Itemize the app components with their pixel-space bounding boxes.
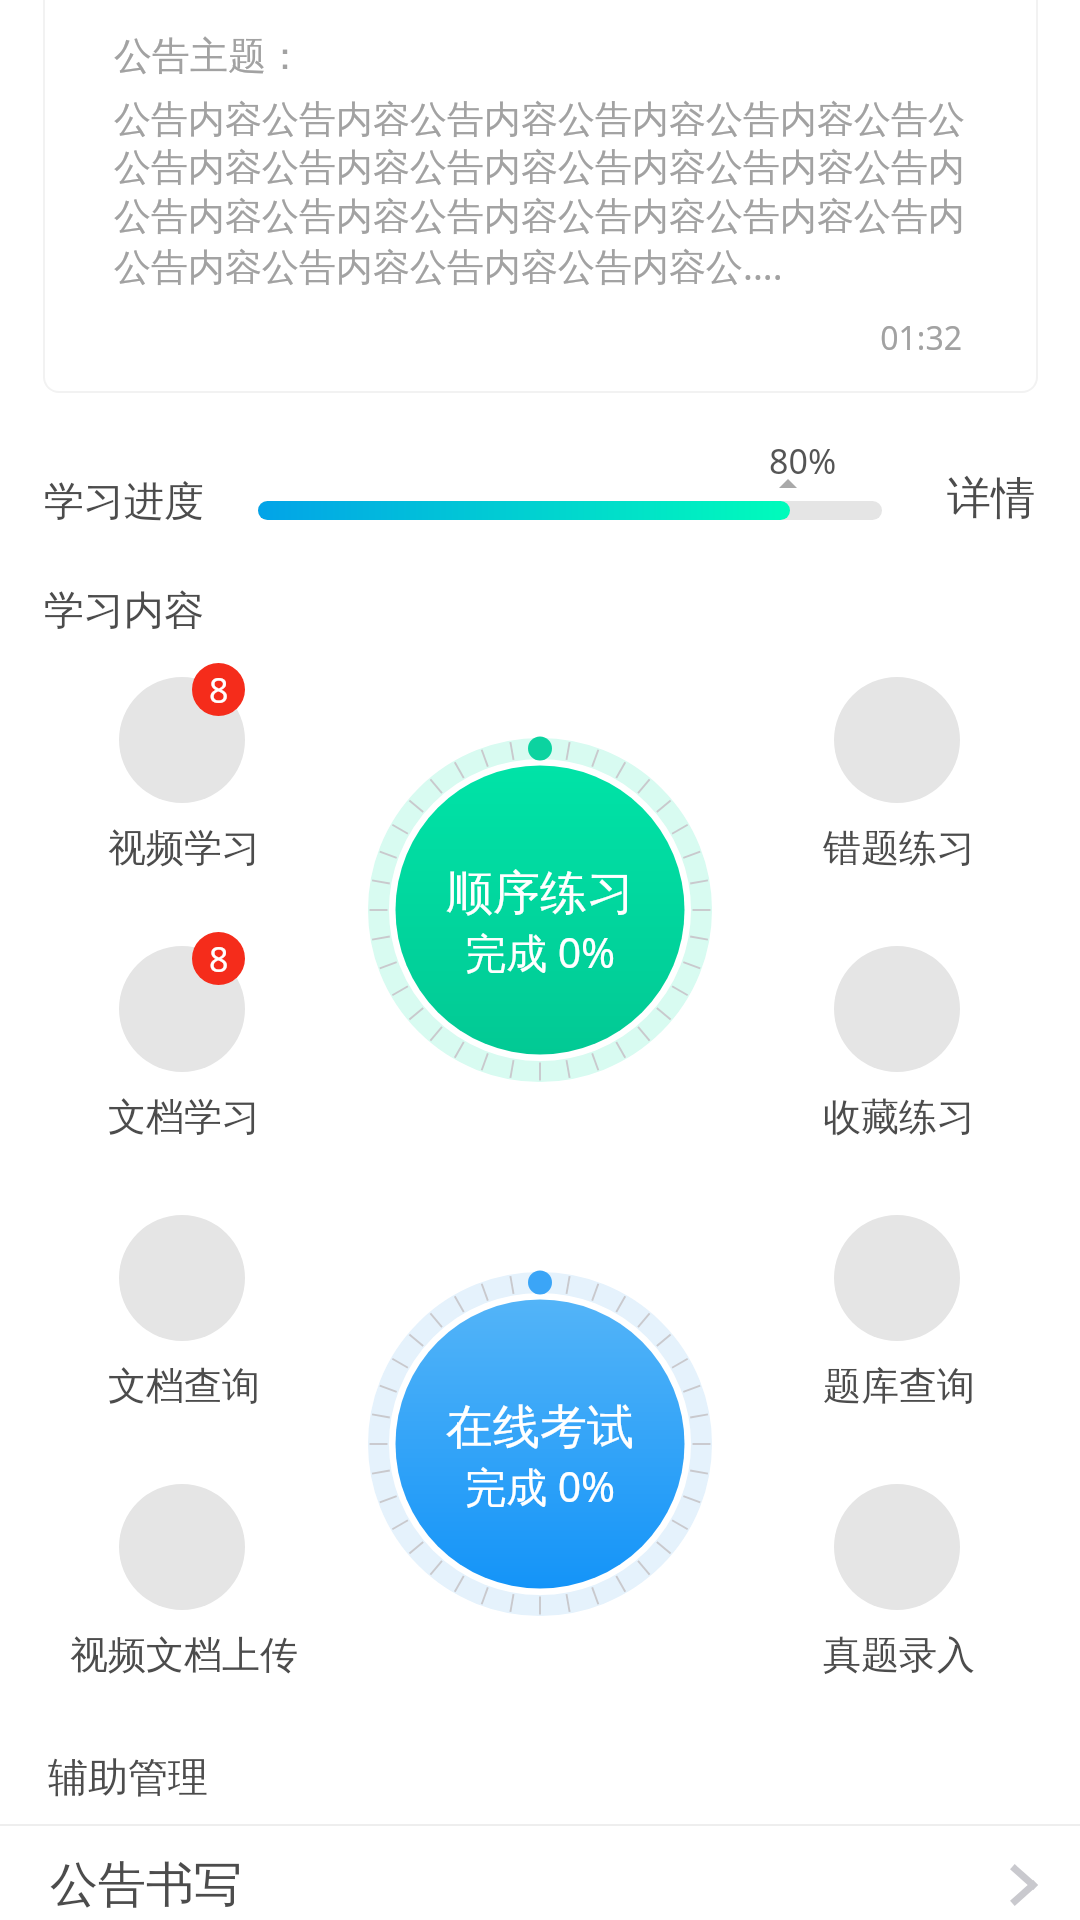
button[interactable]: 视频文档上传 — [0, 1470, 397, 1683]
other: 真题录入 — [834, 1484, 960, 1610]
button[interactable]: 视频学习 — [0, 663, 397, 876]
button[interactable]: 文档查询 — [0, 1201, 397, 1414]
staticText: 文档学习 — [108, 1093, 260, 1141]
staticText: 收藏练习 — [823, 1093, 975, 1141]
staticText: 视频文档上传 — [70, 1631, 298, 1679]
other: 视频学习 — [119, 677, 245, 803]
staticText: 完成 0% — [465, 1458, 616, 1514]
staticText: 在线考试 — [446, 1398, 634, 1457]
staticText: 视频学习 — [108, 824, 260, 872]
staticText: 8 — [209, 667, 229, 713]
staticText: 题库查询 — [823, 1362, 975, 1410]
other: 视频文档上传 — [119, 1484, 245, 1610]
staticText: 顺序练习 — [446, 864, 634, 923]
other: 错题练习 — [834, 677, 960, 803]
other: 打开 — [1012, 1866, 1036, 1904]
other: 收藏练习 — [834, 946, 960, 1072]
other: 题库查询 — [834, 1215, 960, 1341]
other: 文档学习 — [119, 946, 245, 1072]
other: 文档查询 — [119, 1215, 245, 1341]
staticText: 辅助管理 — [48, 1752, 208, 1802]
staticText: 学习进度 — [44, 476, 204, 526]
button[interactable]: 错题练习 — [686, 663, 1080, 876]
button[interactable]: 顺序练习 — [368, 738, 712, 1082]
button[interactable]: 收藏练习 — [686, 932, 1080, 1145]
button[interactable]: 公告书写 — [0, 1838, 1080, 1920]
staticText: 公告内容公告内容公告内容公告内容公告内容公告公 公告内容公告内容公告内容公告内容… — [114, 96, 965, 291]
staticText: 01:32 — [114, 316, 962, 360]
staticText: 完成 0% — [465, 924, 616, 980]
button[interactable]: 详情 — [941, 467, 1041, 530]
button[interactable]: 文档学习 — [0, 932, 397, 1145]
staticText: 公告书写 — [50, 1855, 242, 1915]
staticText: 错题练习 — [823, 824, 975, 872]
staticText: 学习内容 — [44, 585, 204, 635]
button[interactable]: 题库查询 — [686, 1201, 1080, 1414]
button[interactable]: 公告主题： — [45, 0, 1036, 391]
button[interactable]: 真题录入 — [686, 1470, 1080, 1683]
staticText: 8 — [209, 936, 229, 982]
staticText: 文档查询 — [108, 1362, 260, 1410]
button[interactable]: 在线考试 — [368, 1272, 712, 1616]
staticText: 公告主题： — [114, 32, 304, 80]
staticText: 80% — [769, 438, 837, 484]
staticText: 真题录入 — [823, 1631, 975, 1679]
